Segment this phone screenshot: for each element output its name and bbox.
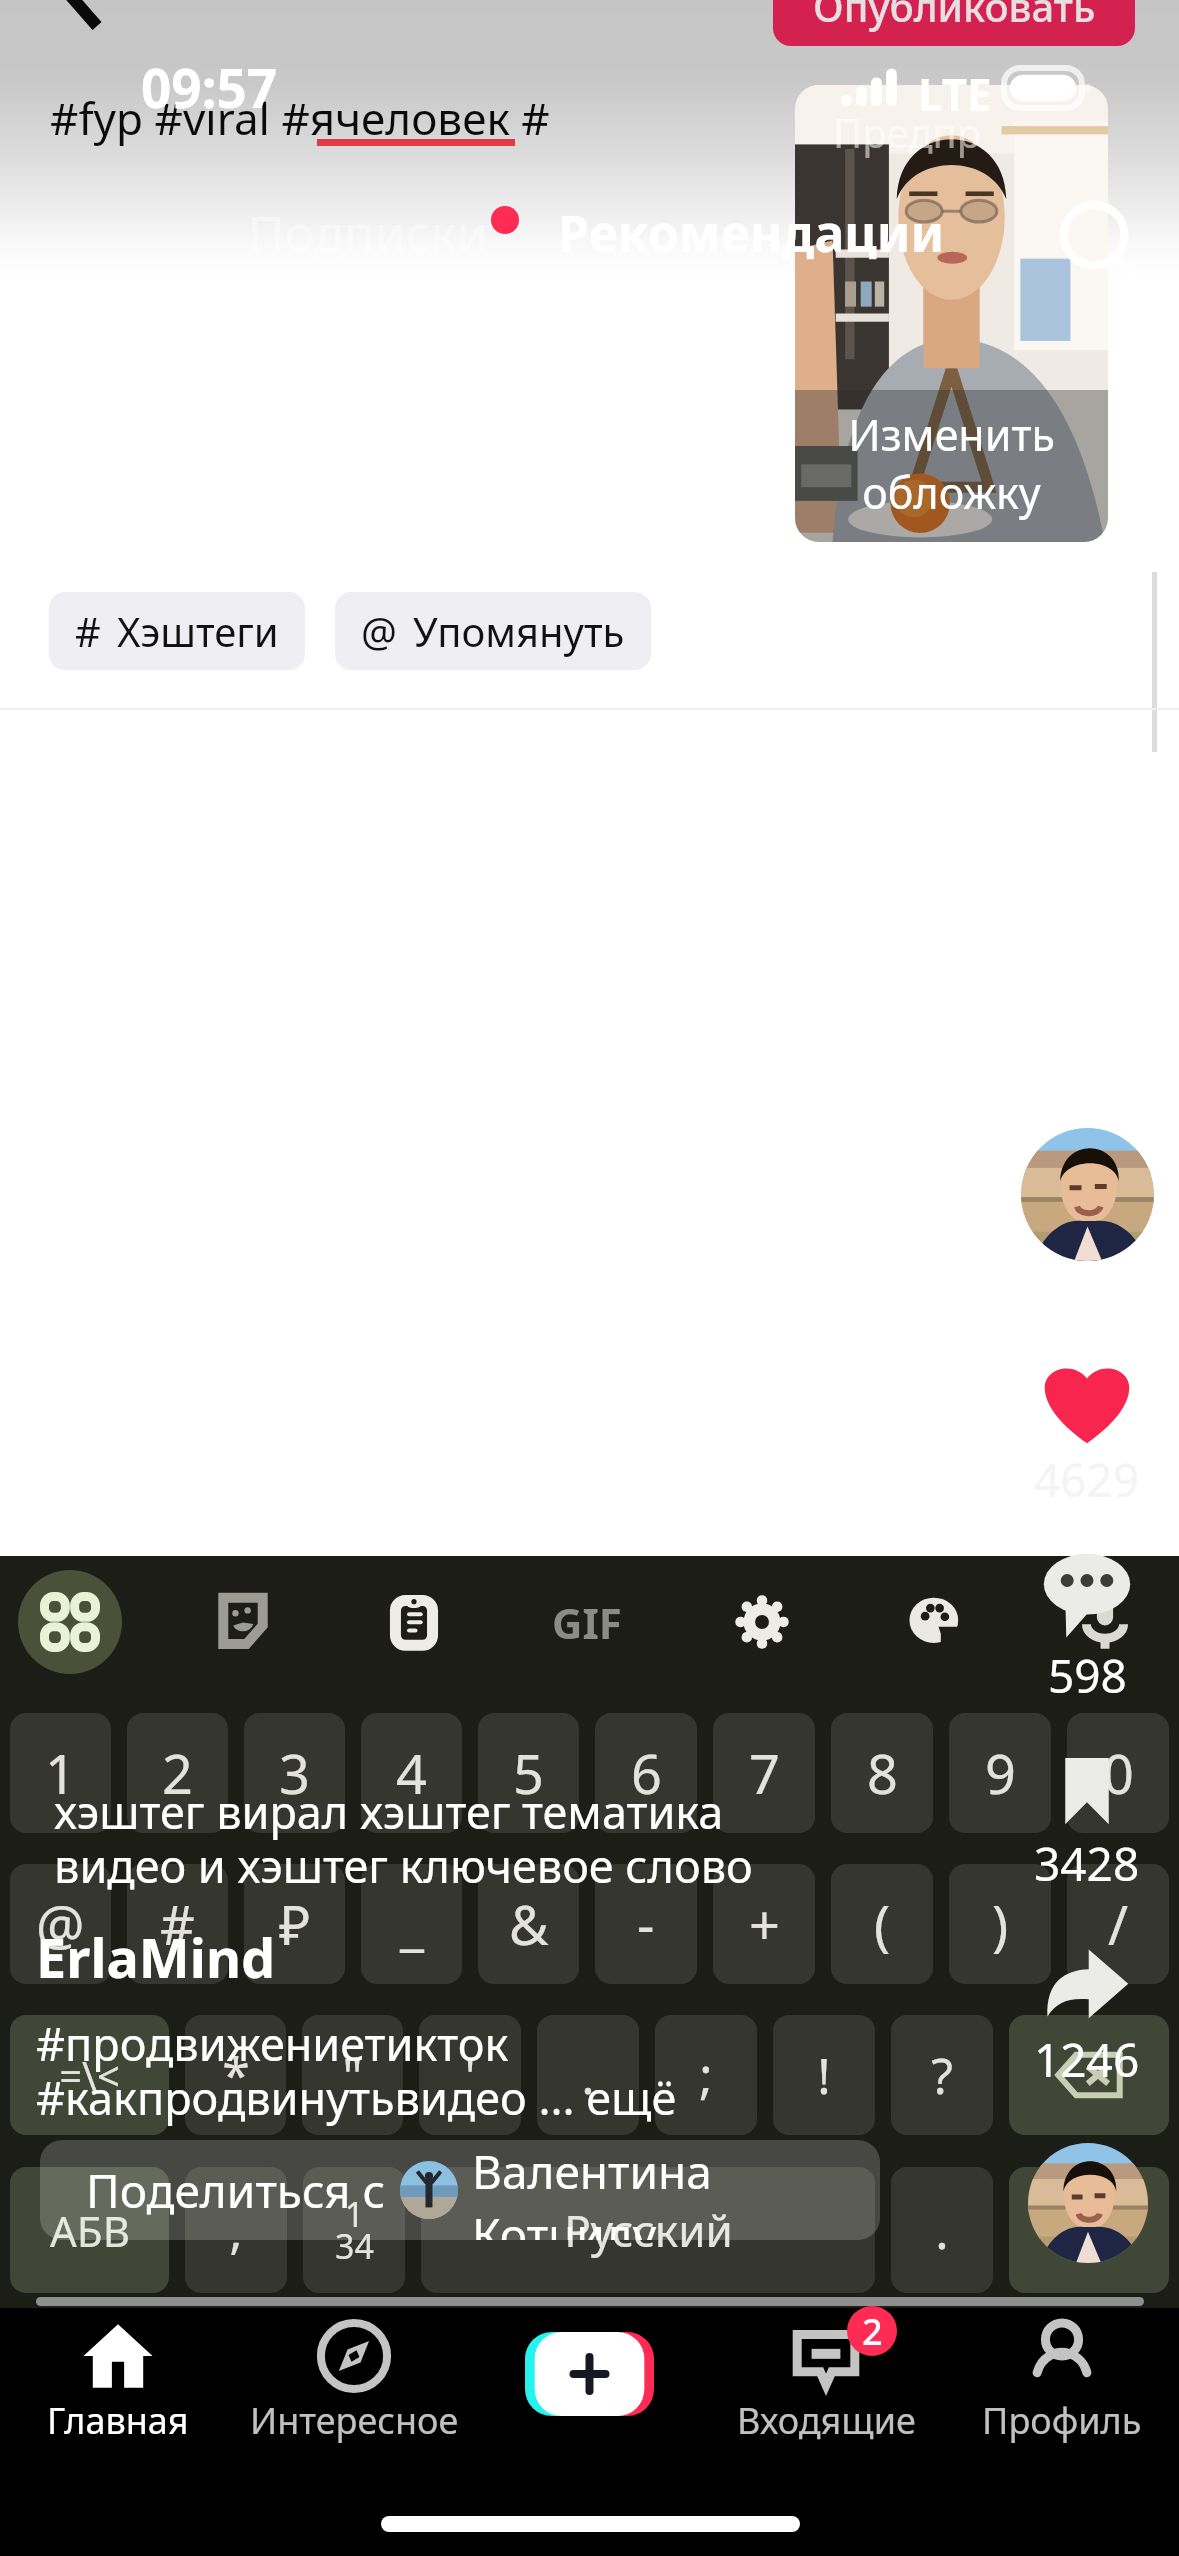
button[interactable]: Подписки (238, 193, 498, 273)
staticText: 6 (631, 1736, 662, 1810)
staticText: 4629 (1034, 1448, 1140, 1511)
button[interactable]: Интересное (244, 2320, 464, 2450)
button[interactable]: . (891, 2167, 993, 2293)
button[interactable]: , (185, 2167, 287, 2293)
staticText: ; (699, 2041, 713, 2109)
button[interactable]: Keyboard tool (710, 1570, 814, 1674)
button[interactable]: Рекомендации (548, 193, 955, 273)
staticText: 1246 (1034, 2028, 1140, 2091)
button[interactable]: Profile (1021, 1128, 1154, 1261)
staticText: 7 (749, 1736, 780, 1810)
staticText: , (229, 2196, 243, 2264)
button[interactable]: 4 (361, 1713, 462, 1833)
staticText: хэштег вирал хэштег тематика (54, 1781, 724, 1842)
button[interactable]: ( (831, 1864, 933, 1984)
staticText: 8 (867, 1736, 898, 1810)
button[interactable]: - (595, 1864, 697, 1984)
staticText: Изменить обложку (848, 405, 1055, 521)
button[interactable]: # (127, 1864, 228, 1984)
button[interactable]: _ (361, 1864, 462, 1984)
button[interactable]: Изменить обложку (795, 85, 1108, 542)
button[interactable]: 5 (478, 1713, 579, 1833)
button[interactable]: @ (335, 592, 651, 670)
button[interactable]: АБВ (10, 2167, 169, 2293)
button[interactable]: 9 (949, 1713, 1051, 1833)
button[interactable]: 2 (716, 2320, 936, 2450)
button[interactable]: 1 (10, 1713, 111, 1833)
button[interactable]: Русский (421, 2167, 875, 2293)
staticText: . (935, 2196, 949, 2264)
button[interactable]: Keyboard tool (18, 1570, 122, 1674)
button[interactable]: Search (1053, 196, 1151, 294)
staticText: ₽ (279, 1887, 311, 1961)
staticText: . (581, 2041, 595, 2109)
button[interactable]: Back (40, 0, 130, 60)
staticText: ' (464, 2041, 476, 2109)
button[interactable]: Keyboard tool (191, 1570, 295, 1674)
button[interactable]: 7 (713, 1713, 815, 1833)
button[interactable]: ) (949, 1864, 1051, 1984)
staticText: # (160, 1887, 195, 1961)
button[interactable]: 0 (1067, 1713, 1169, 1833)
staticText: 9 (985, 1736, 1016, 1810)
button[interactable]: Backspace (1009, 2015, 1169, 2135)
button[interactable]: Music (1028, 2143, 1148, 2263)
staticText: LTE (918, 64, 992, 124)
button[interactable]: 8 (831, 1713, 933, 1833)
staticText: Рекомендации (558, 199, 945, 267)
button[interactable]: Keyboard tool (535, 1570, 639, 1674)
staticText: @ (361, 604, 397, 658)
staticText: * (222, 2041, 250, 2109)
staticText: #fyp #viral #ячеловек # (50, 88, 550, 148)
button[interactable]: # (49, 592, 305, 670)
staticText: 2 (862, 2307, 883, 2356)
staticText: & (509, 1887, 549, 1961)
button[interactable]: * (185, 2015, 286, 2135)
staticText: # (75, 604, 101, 658)
button[interactable]: " (302, 2015, 403, 2135)
button[interactable]: Comments (1017, 1552, 1157, 1644)
staticText: Подписки (248, 199, 488, 267)
staticText: ErlaMind (36, 1920, 276, 1994)
button[interactable]: ↵ (1009, 2167, 1169, 2293)
button[interactable]: Поделиться с (40, 2140, 880, 2240)
staticText: ? (931, 2041, 953, 2109)
staticText: Русский (564, 2200, 733, 2260)
button[interactable]: @ (10, 1864, 111, 1984)
staticText: #продвижениетикток (36, 2013, 509, 2074)
staticText: 2 (162, 1736, 193, 1810)
staticText: / (1108, 1887, 1129, 1961)
button[interactable]: =\< (10, 2015, 169, 2135)
button[interactable]: Keyboard tool (1053, 1570, 1157, 1674)
button[interactable]: 2 (127, 1713, 228, 1833)
button[interactable]: Профиль (952, 2320, 1172, 2450)
button[interactable]: Опубликовать (773, 0, 1135, 46)
button[interactable]: + (713, 1864, 815, 1984)
staticText: 1 (45, 1736, 76, 1810)
button[interactable]: 1 34 (303, 2167, 405, 2293)
button[interactable]: . (537, 2015, 639, 2135)
button[interactable]: Save (1017, 1752, 1157, 1828)
button[interactable]: Keyboard tool (362, 1570, 466, 1674)
staticText: Опубликовать (813, 0, 1096, 33)
button[interactable]: Share (1017, 1946, 1157, 2032)
button[interactable]: ₽ (244, 1864, 345, 1984)
button[interactable]: Create (525, 2332, 654, 2416)
button[interactable]: Like (1017, 1360, 1157, 1444)
button[interactable]: ? (891, 2015, 993, 2135)
button[interactable]: ! (773, 2015, 875, 2135)
staticText: 0 (1103, 1736, 1134, 1810)
button[interactable]: / (1067, 1864, 1169, 1984)
button[interactable]: Keyboard tool (883, 1570, 987, 1674)
staticText: @ (36, 1887, 85, 1961)
button[interactable]: 6 (595, 1713, 697, 1833)
button[interactable]: & (478, 1864, 579, 1984)
staticText: + (749, 1887, 780, 1961)
button[interactable]: ; (655, 2015, 757, 2135)
staticText: Поделиться с (86, 2159, 386, 2222)
staticText: =\< (59, 2048, 120, 2102)
button[interactable]: Главная (8, 2320, 228, 2450)
staticText: Интересное (250, 2396, 459, 2445)
button[interactable]: 3 (244, 1713, 345, 1833)
button[interactable]: ' (419, 2015, 521, 2135)
